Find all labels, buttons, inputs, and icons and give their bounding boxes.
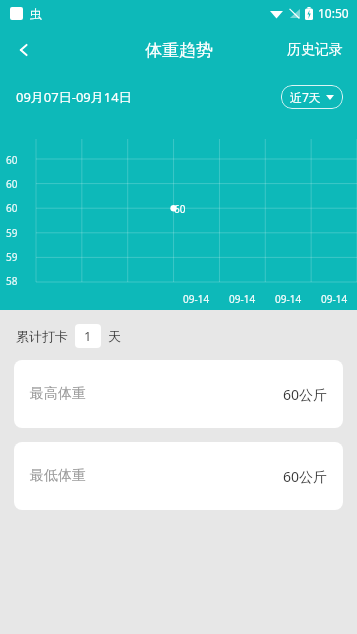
button[interactable]: Back <box>0 26 48 74</box>
staticText: 09-14 <box>321 292 348 306</box>
staticText: 09月07日-09月14日 <box>16 88 132 106</box>
staticText: 60 <box>6 153 18 167</box>
staticText: 近7天 <box>290 89 321 105</box>
staticText: 天 <box>108 328 121 344</box>
staticText: 09-14 <box>229 292 256 306</box>
staticText: 最高体重 <box>30 385 86 403</box>
staticText: 09-14 <box>275 292 302 306</box>
staticText: 60公斤 <box>282 385 327 404</box>
staticText: 60 <box>174 202 186 216</box>
staticText: 历史记录 <box>287 41 343 59</box>
staticText: 59 <box>6 250 18 264</box>
button[interactable]: 近7天 <box>281 85 343 109</box>
staticText: 58 <box>6 274 18 288</box>
staticText: 虫 <box>30 6 42 21</box>
staticText: 10:50 <box>318 5 349 21</box>
staticText: 09-14 <box>183 292 210 306</box>
staticText: 最低体重 <box>30 467 86 485</box>
button[interactable]: 最低体重 <box>14 442 343 510</box>
staticText: 60 <box>6 177 18 191</box>
staticText: 1 <box>84 327 92 345</box>
staticText: 累计打卡 <box>16 328 68 344</box>
button[interactable]: 历史记录 <box>273 29 357 71</box>
staticText: 59 <box>6 226 18 240</box>
staticText: 体重趋势 <box>145 40 213 61</box>
button[interactable]: 最高体重 <box>14 360 343 428</box>
staticText: 60公斤 <box>282 467 327 486</box>
staticText: 60 <box>6 201 18 215</box>
